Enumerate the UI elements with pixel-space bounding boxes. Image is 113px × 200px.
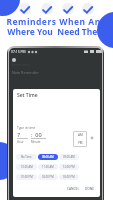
staticText: CANCEL (67, 187, 80, 191)
button[interactable]: 10:00 AM (16, 164, 37, 170)
staticText: : 00 (31, 131, 42, 138)
staticText: 11:00 AM (42, 165, 54, 169)
staticText: Type in time (17, 126, 36, 130)
staticText: Minute (31, 140, 41, 144)
button[interactable]: 12:00 PM (59, 164, 79, 170)
button[interactable]: 02:00 PM (38, 174, 58, 180)
other: Feature check (81, 0, 95, 14)
staticText: Where You Need Them (7, 26, 106, 38)
button[interactable]: AM (73, 131, 87, 147)
staticText: Hour (17, 140, 24, 144)
staticText: DONE (85, 187, 95, 191)
staticText: AM (78, 133, 83, 137)
other: Feature check (18, 0, 32, 14)
staticText: 07:15 PM (11, 49, 26, 54)
staticText: 03:00 PM (63, 175, 75, 179)
button[interactable]: DONE (84, 186, 96, 192)
staticText: New Reminder (12, 70, 39, 75)
button[interactable]: 08:00 AM (38, 154, 58, 160)
button[interactable]: 03:00 PM (59, 174, 79, 180)
staticText: 09:00 AM (63, 155, 75, 159)
staticText: 12:00 PM (63, 165, 75, 169)
staticText: 01:00 PM (21, 175, 33, 179)
button[interactable]: 09:00 AM (59, 154, 79, 160)
button[interactable]: 01:00 PM (16, 174, 37, 180)
staticText: No Time (21, 155, 32, 159)
other: Feature check (61, 0, 75, 14)
staticText: 08:00 AM (42, 155, 54, 159)
staticText: Reminders When And (6, 16, 107, 28)
staticText: 02:00 PM (42, 175, 54, 179)
staticText: Set Time (17, 92, 38, 99)
button[interactable]: 11:00 AM (38, 164, 58, 170)
staticText: 10:00 AM (21, 165, 33, 169)
button[interactable]: CANCEL (66, 186, 81, 192)
other: Feature check (40, 0, 54, 14)
staticText: PM (78, 141, 83, 145)
button[interactable]: No Time (16, 154, 37, 160)
staticText: 7 (17, 131, 21, 138)
